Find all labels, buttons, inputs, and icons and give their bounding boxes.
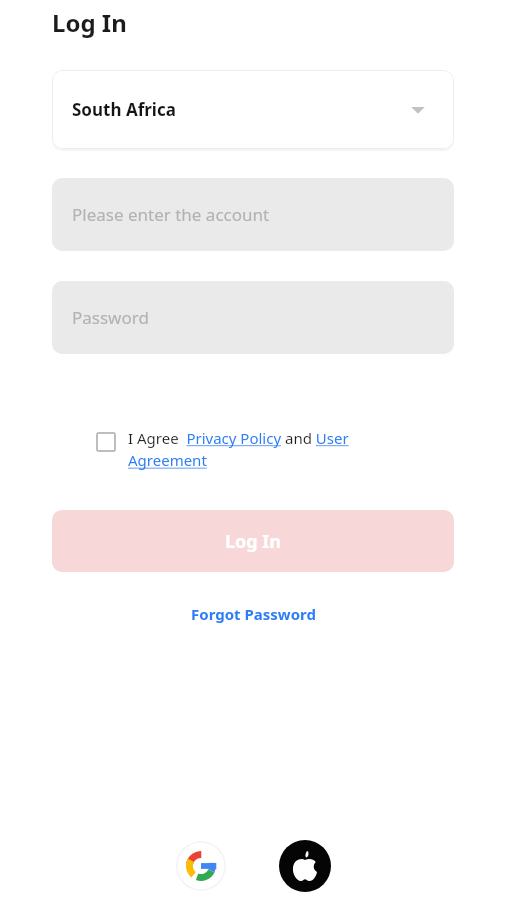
- button[interactable]: I Agree checkbox: [96, 428, 416, 471]
- button[interactable]: Sign in with Apple: [279, 840, 331, 892]
- button[interactable]: Sign in with Google: [176, 841, 226, 891]
- staticText: I Agree Privacy Policy and User Agreemen…: [128, 428, 416, 471]
- staticText: Please enter the account: [72, 203, 270, 226]
- staticText: Log In: [52, 6, 127, 39]
- button[interactable]: Log In: [52, 510, 454, 572]
- other: I Agree checkbox: [96, 432, 116, 452]
- staticText: Forgot Password: [191, 604, 316, 624]
- staticText: Log In: [225, 529, 282, 554]
- button[interactable]: Please enter the account: [52, 178, 454, 251]
- staticText: South Africa: [72, 98, 176, 121]
- button[interactable]: Password: [52, 281, 454, 354]
- button[interactable]: Forgot Password: [0, 601, 506, 627]
- staticText: Password: [72, 306, 149, 329]
- button[interactable]: South Africa: [52, 70, 454, 149]
